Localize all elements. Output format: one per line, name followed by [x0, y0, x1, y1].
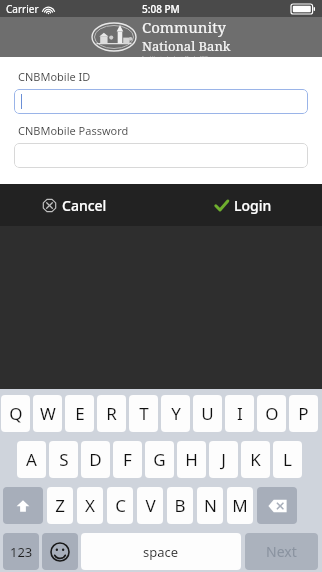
button[interactable]: J [209, 441, 238, 478]
button[interactable]: E [65, 395, 94, 432]
staticText: Next [266, 542, 297, 561]
button[interactable]: 123 [3, 533, 39, 570]
staticText: P [298, 402, 309, 425]
staticText: F [123, 448, 132, 471]
button[interactable]: B [167, 487, 193, 524]
staticText: Cancel [62, 196, 107, 215]
staticText: V [145, 494, 156, 517]
button[interactable] [14, 89, 308, 114]
staticText: 5:08 PM [142, 2, 180, 16]
button[interactable]: S [49, 441, 78, 478]
button[interactable]: Emoji [42, 533, 78, 570]
button[interactable]: H [177, 441, 206, 478]
button[interactable]: U [193, 395, 222, 432]
button[interactable]: L [273, 441, 302, 478]
staticText: Carrier [6, 2, 39, 16]
button[interactable] [14, 143, 308, 168]
button[interactable]: K [241, 441, 270, 478]
button[interactable]: D [81, 441, 110, 478]
staticText: G [153, 448, 166, 471]
button[interactable]: Q [1, 395, 30, 432]
staticText: Equal Housing Lender ■ Member FDIC [142, 55, 208, 57]
staticText: Login [234, 196, 272, 215]
button[interactable]: Backspace [257, 487, 297, 524]
staticText: Y [171, 402, 181, 425]
staticText: National Bank [142, 37, 231, 55]
button[interactable]: Z [47, 487, 73, 524]
button[interactable]: M [227, 487, 253, 524]
button[interactable]: Login [210, 192, 276, 219]
button[interactable]: Next [245, 533, 318, 570]
staticText: X [85, 494, 95, 517]
button[interactable]: R [97, 395, 126, 432]
staticText: W [40, 402, 56, 425]
button[interactable]: F [113, 441, 142, 478]
button[interactable]: V [137, 487, 163, 524]
staticText: R [106, 402, 117, 425]
staticText: S [59, 448, 69, 471]
staticText: D [89, 448, 102, 471]
button[interactable]: T [129, 395, 158, 432]
staticText: Z [55, 494, 65, 517]
staticText: CNBMobile ID [18, 69, 91, 84]
button[interactable]: I [225, 395, 254, 432]
staticText: L [283, 448, 292, 471]
staticText: N [204, 494, 217, 517]
staticText: Q [9, 402, 23, 425]
staticText: B [174, 494, 186, 517]
button[interactable]: G [145, 441, 174, 478]
staticText: J [221, 448, 226, 471]
staticText: 123 [10, 543, 33, 561]
button[interactable]: Cancel [38, 192, 111, 219]
staticText: A [26, 448, 37, 471]
button[interactable]: Y [161, 395, 190, 432]
button[interactable]: P [289, 395, 318, 432]
button[interactable]: Shift [3, 487, 43, 524]
button[interactable]: space [81, 533, 241, 570]
button[interactable]: N [197, 487, 223, 524]
staticText: U [201, 402, 214, 425]
staticText: C [115, 494, 126, 517]
staticText: K [250, 448, 261, 471]
staticText: H [185, 448, 198, 471]
button[interactable]: O [257, 395, 286, 432]
staticText: E [75, 402, 85, 425]
staticText: M [232, 494, 248, 517]
staticText: Community [142, 17, 226, 37]
staticText: I [237, 402, 243, 425]
staticText: space [143, 543, 179, 561]
button[interactable]: X [77, 487, 103, 524]
button[interactable]: A [17, 441, 46, 478]
staticText: CNBMobile Password [18, 123, 129, 138]
button[interactable]: C [107, 487, 133, 524]
button[interactable]: W [33, 395, 62, 432]
staticText: O [265, 402, 279, 425]
staticText: T [139, 402, 149, 425]
